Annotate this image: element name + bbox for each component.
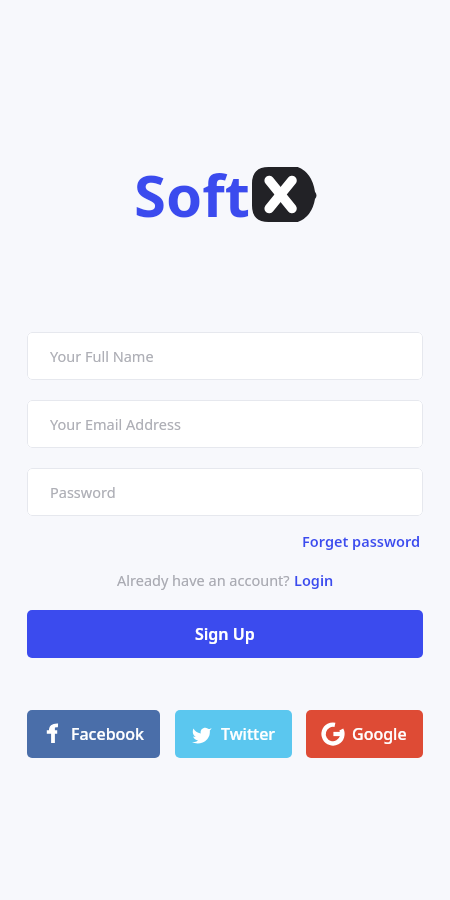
- staticText: Login: [294, 570, 334, 590]
- staticText: Twitter: [221, 723, 276, 745]
- button[interactable]: Password: [27, 468, 423, 516]
- button[interactable]: Facebook: [27, 710, 160, 758]
- button[interactable]: Login: [294, 570, 334, 590]
- staticText: Already have an account?: [117, 570, 294, 590]
- staticText: Your Email Address: [50, 414, 181, 434]
- button[interactable]: Google: [306, 710, 423, 758]
- staticText: Soft: [134, 155, 250, 234]
- staticText: Forget password: [302, 531, 421, 551]
- button[interactable]: Your Full Name: [27, 332, 423, 380]
- other: SoftX logo: [252, 167, 317, 222]
- button[interactable]: Forget password: [300, 529, 423, 553]
- button[interactable]: Twitter: [175, 710, 292, 758]
- staticText: Password: [50, 482, 116, 502]
- staticText: Sign Up: [195, 623, 255, 645]
- staticText: Your Full Name: [50, 346, 154, 366]
- button[interactable]: Sign Up: [27, 610, 423, 658]
- staticText: Google: [352, 723, 407, 745]
- button[interactable]: Your Email Address: [27, 400, 423, 448]
- staticText: Facebook: [71, 723, 145, 745]
